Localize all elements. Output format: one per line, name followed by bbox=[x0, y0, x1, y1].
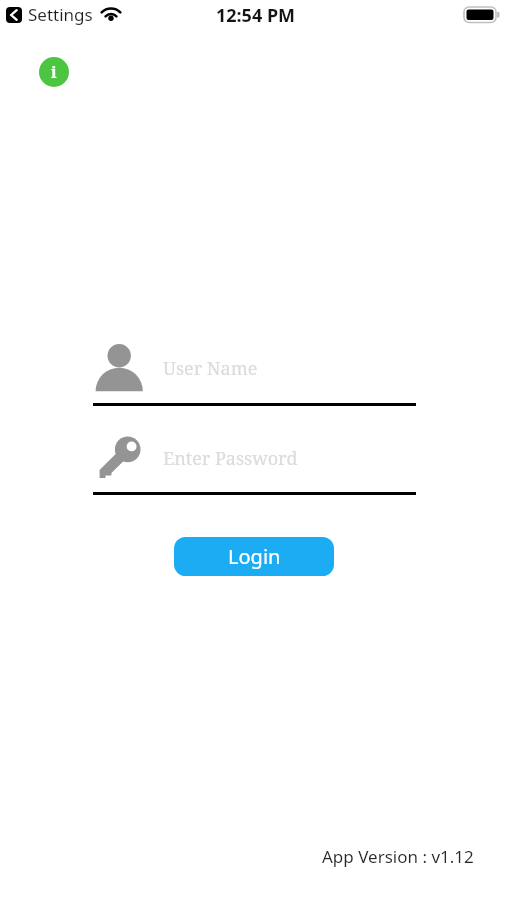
staticText: Login bbox=[228, 543, 281, 570]
other: Wi-Fi bbox=[99, 0, 125, 26]
staticText: App Version : v1.12 bbox=[322, 845, 474, 868]
button[interactable]: Back bbox=[6, 7, 22, 23]
other: Battery full bbox=[464, 7, 502, 24]
button[interactable]: Enter Password bbox=[92, 430, 416, 490]
staticText: User Name bbox=[163, 356, 258, 381]
staticText: Enter Password bbox=[163, 446, 298, 471]
staticText: 12:54 PM bbox=[2, 3, 507, 28]
button[interactable]: User Name bbox=[92, 340, 416, 406]
button[interactable]: Login bbox=[174, 537, 334, 576]
staticText: i bbox=[51, 61, 57, 83]
staticText: Settings bbox=[28, 3, 93, 26]
button[interactable]: Information bbox=[39, 57, 69, 87]
